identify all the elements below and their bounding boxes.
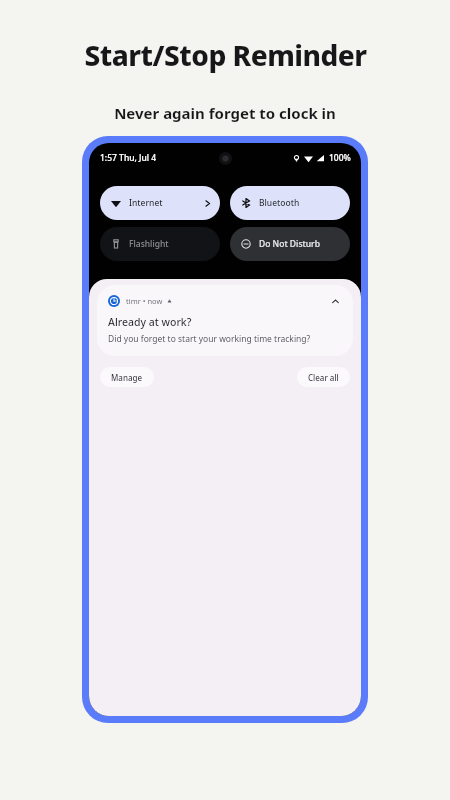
staticText: timr • now (126, 296, 163, 306)
staticText: Manage (111, 372, 143, 383)
button[interactable]: timr • now (97, 285, 353, 356)
staticText: Internet (129, 197, 163, 209)
staticText: Never again forget to clock in (114, 103, 336, 123)
button[interactable]: Bluetooth (230, 186, 350, 220)
staticText: Bluetooth (259, 197, 300, 209)
button[interactable]: Manage (100, 367, 154, 387)
button[interactable]: Clear all (297, 367, 350, 387)
staticText: Flashlight (129, 238, 169, 250)
staticText: Start/Stop Reminder (84, 36, 367, 74)
staticText: 100% (329, 152, 351, 164)
staticText: Already at work? (108, 315, 192, 329)
staticText: Do Not Disturb (259, 238, 320, 250)
staticText: Did you forget to start your working tim… (108, 333, 311, 345)
staticText: 1:57 Thu, Jul 4 (100, 152, 157, 164)
button[interactable]: Flashlight (100, 227, 220, 261)
button[interactable]: Collapse notification (328, 294, 342, 308)
staticText: Clear all (308, 372, 339, 383)
button[interactable]: Do Not Disturb (230, 227, 350, 261)
button[interactable]: Internet (100, 186, 220, 220)
